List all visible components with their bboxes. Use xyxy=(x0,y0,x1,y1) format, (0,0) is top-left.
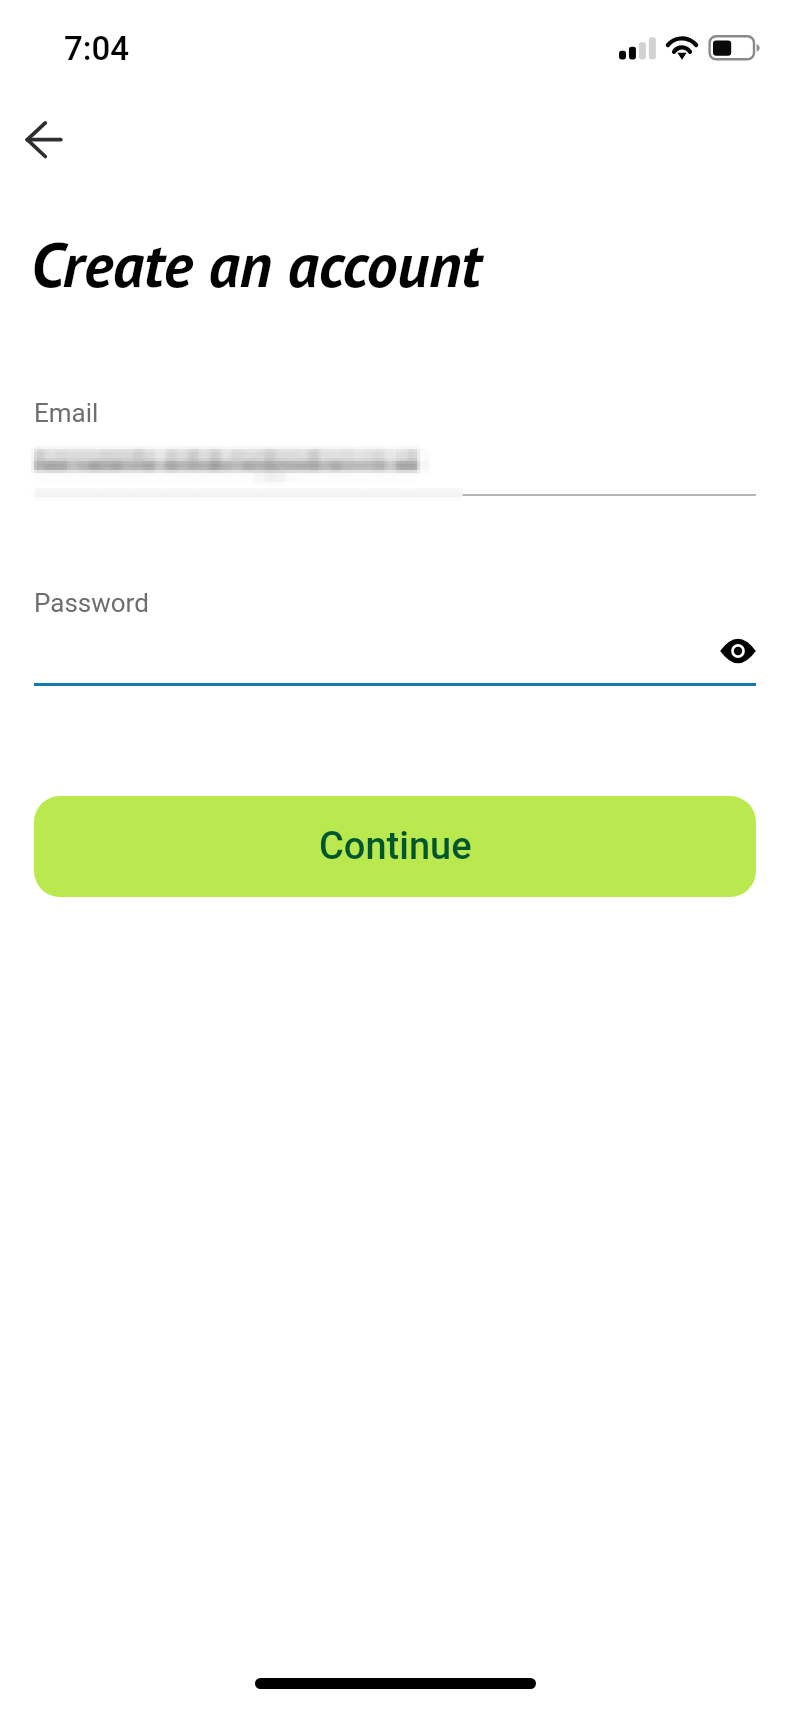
staticText: Continue xyxy=(319,824,472,869)
button[interactable]: Show password xyxy=(707,620,768,681)
button[interactable]: Continue xyxy=(34,796,756,897)
staticText: 7:04 xyxy=(64,29,130,68)
staticText: Password xyxy=(34,588,149,618)
button[interactable]: Back xyxy=(10,106,78,174)
staticText: Email xyxy=(34,398,99,428)
staticText: Create an account xyxy=(31,224,482,304)
